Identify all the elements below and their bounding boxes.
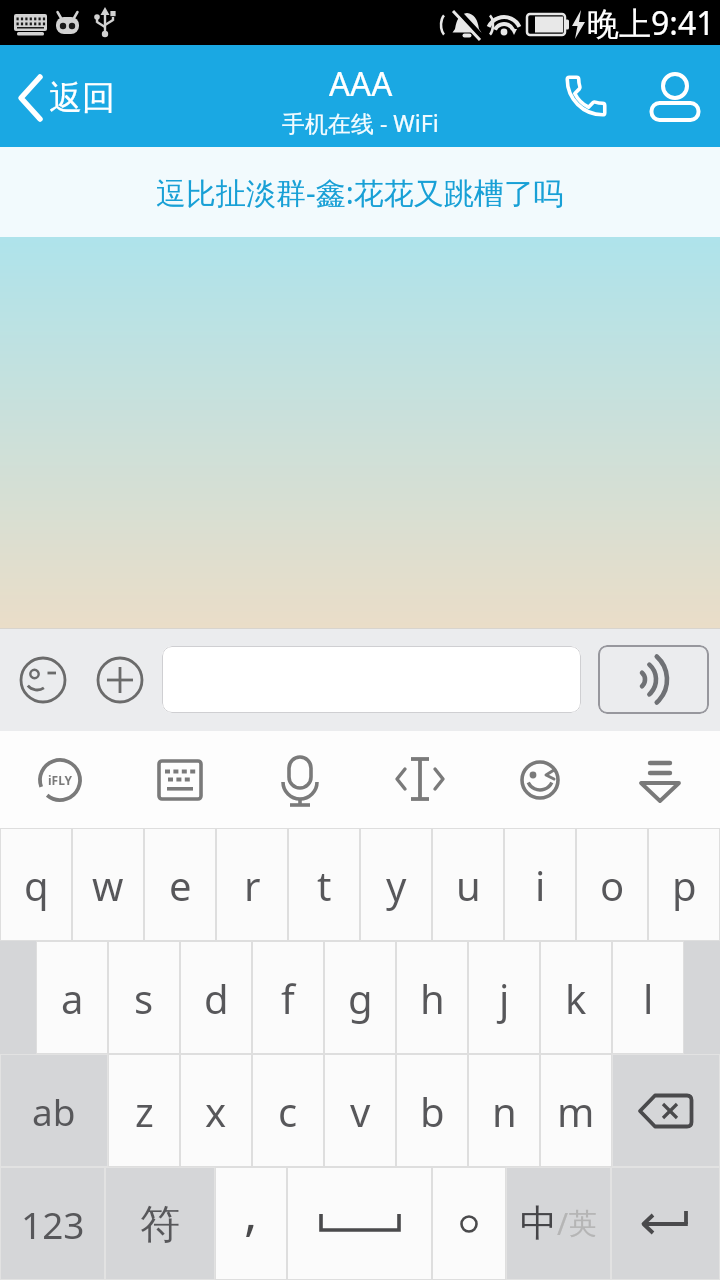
- button[interactable]: 符: [105, 1167, 215, 1280]
- button[interactable]: 中: [506, 1167, 611, 1280]
- button[interactable]: s: [108, 941, 180, 1054]
- button[interactable]: x: [180, 1054, 252, 1167]
- staticText: n: [492, 1084, 517, 1138]
- staticText: g: [348, 971, 373, 1025]
- staticText: /: [557, 1203, 569, 1244]
- button[interactable]: u: [432, 828, 504, 941]
- staticText: t: [317, 858, 332, 912]
- button[interactable]: [360, 731, 480, 828]
- staticText: o: [600, 858, 625, 912]
- button[interactable]: w: [72, 828, 144, 941]
- staticText: 手机在线 - WiFi: [282, 107, 439, 138]
- button[interactable]: z: [108, 1054, 180, 1167]
- staticText: z: [135, 1084, 154, 1138]
- staticText: b: [420, 1084, 445, 1138]
- button[interactable]: ab: [0, 1054, 108, 1167]
- button[interactable]: c: [252, 1054, 324, 1167]
- button[interactable]: l: [612, 941, 684, 1054]
- button[interactable]: 123: [0, 1167, 105, 1280]
- staticText: ab: [32, 1086, 76, 1136]
- staticText: x: [205, 1084, 227, 1138]
- button[interactable]: [287, 1167, 432, 1280]
- staticText: j: [499, 971, 510, 1025]
- staticText: w: [92, 858, 124, 912]
- button[interactable]: iFLY: [0, 731, 120, 828]
- staticText: p: [672, 858, 697, 912]
- staticText: v: [350, 1084, 371, 1138]
- button[interactable]: p: [648, 828, 720, 941]
- staticText: 返回: [49, 77, 115, 119]
- staticText: 123: [21, 1199, 85, 1249]
- staticText: 英: [569, 1206, 597, 1241]
- staticText: e: [169, 858, 192, 912]
- button[interactable]: v: [324, 1054, 396, 1167]
- staticText: AAA: [329, 61, 393, 106]
- button[interactable]: h: [396, 941, 468, 1054]
- button[interactable]: [480, 731, 600, 828]
- button[interactable]: r: [216, 828, 288, 941]
- button[interactable]: a: [36, 941, 108, 1054]
- staticText: 逗比扯淡群-鑫:花花又跳槽了吗: [156, 172, 564, 213]
- button[interactable]: [432, 1167, 506, 1280]
- button[interactable]: b: [396, 1054, 468, 1167]
- button[interactable]: o: [576, 828, 648, 941]
- button[interactable]: [240, 731, 360, 828]
- staticText: l: [643, 971, 654, 1025]
- staticText: i: [535, 858, 546, 912]
- button[interactable]: [96, 656, 144, 704]
- button[interactable]: f: [252, 941, 324, 1054]
- staticText: iFLY: [48, 772, 73, 788]
- staticText: 符: [140, 1199, 180, 1249]
- button[interactable]: j: [468, 941, 540, 1054]
- staticText: ,: [244, 1178, 258, 1246]
- button[interactable]: [561, 71, 611, 121]
- button[interactable]: [612, 1054, 720, 1167]
- staticText: k: [565, 971, 587, 1025]
- button[interactable]: [600, 731, 720, 828]
- staticText: 晚上9:41: [587, 1, 715, 45]
- staticText: s: [134, 971, 154, 1025]
- button[interactable]: [162, 646, 581, 713]
- staticText: r: [244, 858, 261, 912]
- staticText: f: [281, 971, 295, 1025]
- button[interactable]: n: [468, 1054, 540, 1167]
- button[interactable]: e: [144, 828, 216, 941]
- button[interactable]: t: [288, 828, 360, 941]
- staticText: d: [204, 971, 229, 1025]
- staticText: h: [420, 971, 445, 1025]
- button[interactable]: [120, 731, 240, 828]
- button[interactable]: [650, 71, 700, 121]
- button[interactable]: 返回: [0, 71, 115, 121]
- staticText: q: [24, 858, 49, 912]
- button[interactable]: y: [360, 828, 432, 941]
- button[interactable]: d: [180, 941, 252, 1054]
- staticText: u: [456, 858, 481, 912]
- button[interactable]: ,: [215, 1167, 287, 1280]
- button[interactable]: [19, 656, 67, 704]
- button[interactable]: q: [0, 828, 72, 941]
- button[interactable]: g: [324, 941, 396, 1054]
- staticText: m: [557, 1084, 595, 1138]
- staticText: 中: [520, 1200, 557, 1247]
- button[interactable]: [611, 1167, 720, 1280]
- button[interactable]: [598, 645, 709, 714]
- button[interactable]: m: [540, 1054, 612, 1167]
- staticText: c: [278, 1084, 298, 1138]
- button[interactable]: i: [504, 828, 576, 941]
- button[interactable]: k: [540, 941, 612, 1054]
- staticText: y: [386, 858, 407, 912]
- staticText: a: [61, 971, 84, 1025]
